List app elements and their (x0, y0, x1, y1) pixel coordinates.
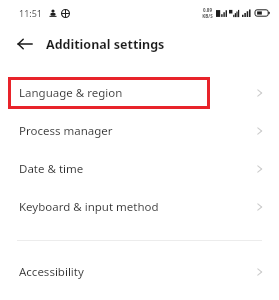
staticText: KB/S (202, 13, 213, 19)
staticText: Keyboard & input method (19, 199, 159, 215)
staticText: 0.89 (203, 7, 212, 13)
staticText: Accessibility (19, 264, 84, 280)
button[interactable]: Keyboard & input method (0, 188, 279, 226)
button[interactable]: Date & time (0, 150, 279, 188)
button[interactable]: Process manager (0, 112, 279, 150)
button[interactable]: Back (13, 32, 37, 56)
staticText: Date & time (19, 161, 84, 177)
staticText: Language & region (19, 85, 123, 101)
staticText: Additional settings (46, 36, 165, 53)
staticText: 11:51 (19, 7, 43, 19)
button[interactable]: Accessibility (0, 253, 279, 291)
staticText: Process manager (19, 123, 113, 139)
